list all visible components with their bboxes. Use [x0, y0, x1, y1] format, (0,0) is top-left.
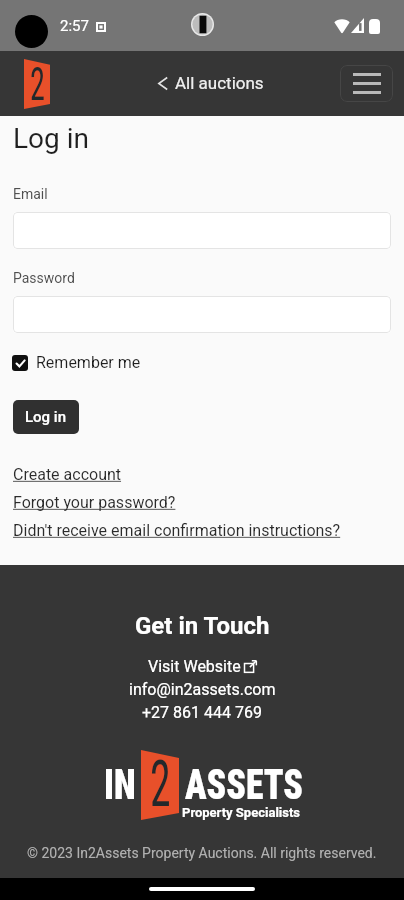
staticText: Email: [13, 186, 48, 202]
staticText: 2: [30, 56, 45, 111]
button[interactable]: +27 861 444 769: [142, 703, 262, 722]
button[interactable]: All auctions: [157, 73, 264, 93]
staticText: Property Specialists: [182, 805, 301, 820]
staticText: 2:57: [60, 17, 89, 35]
button[interactable]: Visit Website: [148, 657, 257, 676]
button[interactable]: Forgot your password?: [13, 493, 176, 512]
button[interactable]: Remember me: [12, 353, 141, 372]
staticText: ASSETS: [185, 760, 303, 809]
staticText: 2: [150, 746, 171, 822]
button[interactable]: Create account: [13, 465, 122, 484]
staticText: © 2023 In2Assets Property Auctions. All …: [27, 845, 377, 861]
button[interactable]: Password field: [13, 296, 391, 333]
staticText: Log in: [13, 122, 89, 155]
button[interactable]: Didn't receive email confirmation instru…: [13, 521, 341, 540]
button[interactable]: Menu: [340, 65, 393, 102]
staticText: All auctions: [175, 73, 264, 93]
button[interactable]: Email field: [13, 212, 391, 249]
button[interactable]: In2Assets home: [24, 59, 50, 109]
staticText: Remember me: [36, 353, 141, 372]
button[interactable]: Log in: [13, 400, 79, 434]
staticText: Visit Website: [148, 657, 241, 676]
button[interactable]: info@in2assets.com: [129, 680, 276, 699]
staticText: Get in Touch: [135, 612, 270, 640]
staticText: IN: [104, 760, 136, 809]
staticText: Password: [13, 270, 75, 286]
staticText: Log in: [25, 408, 67, 426]
